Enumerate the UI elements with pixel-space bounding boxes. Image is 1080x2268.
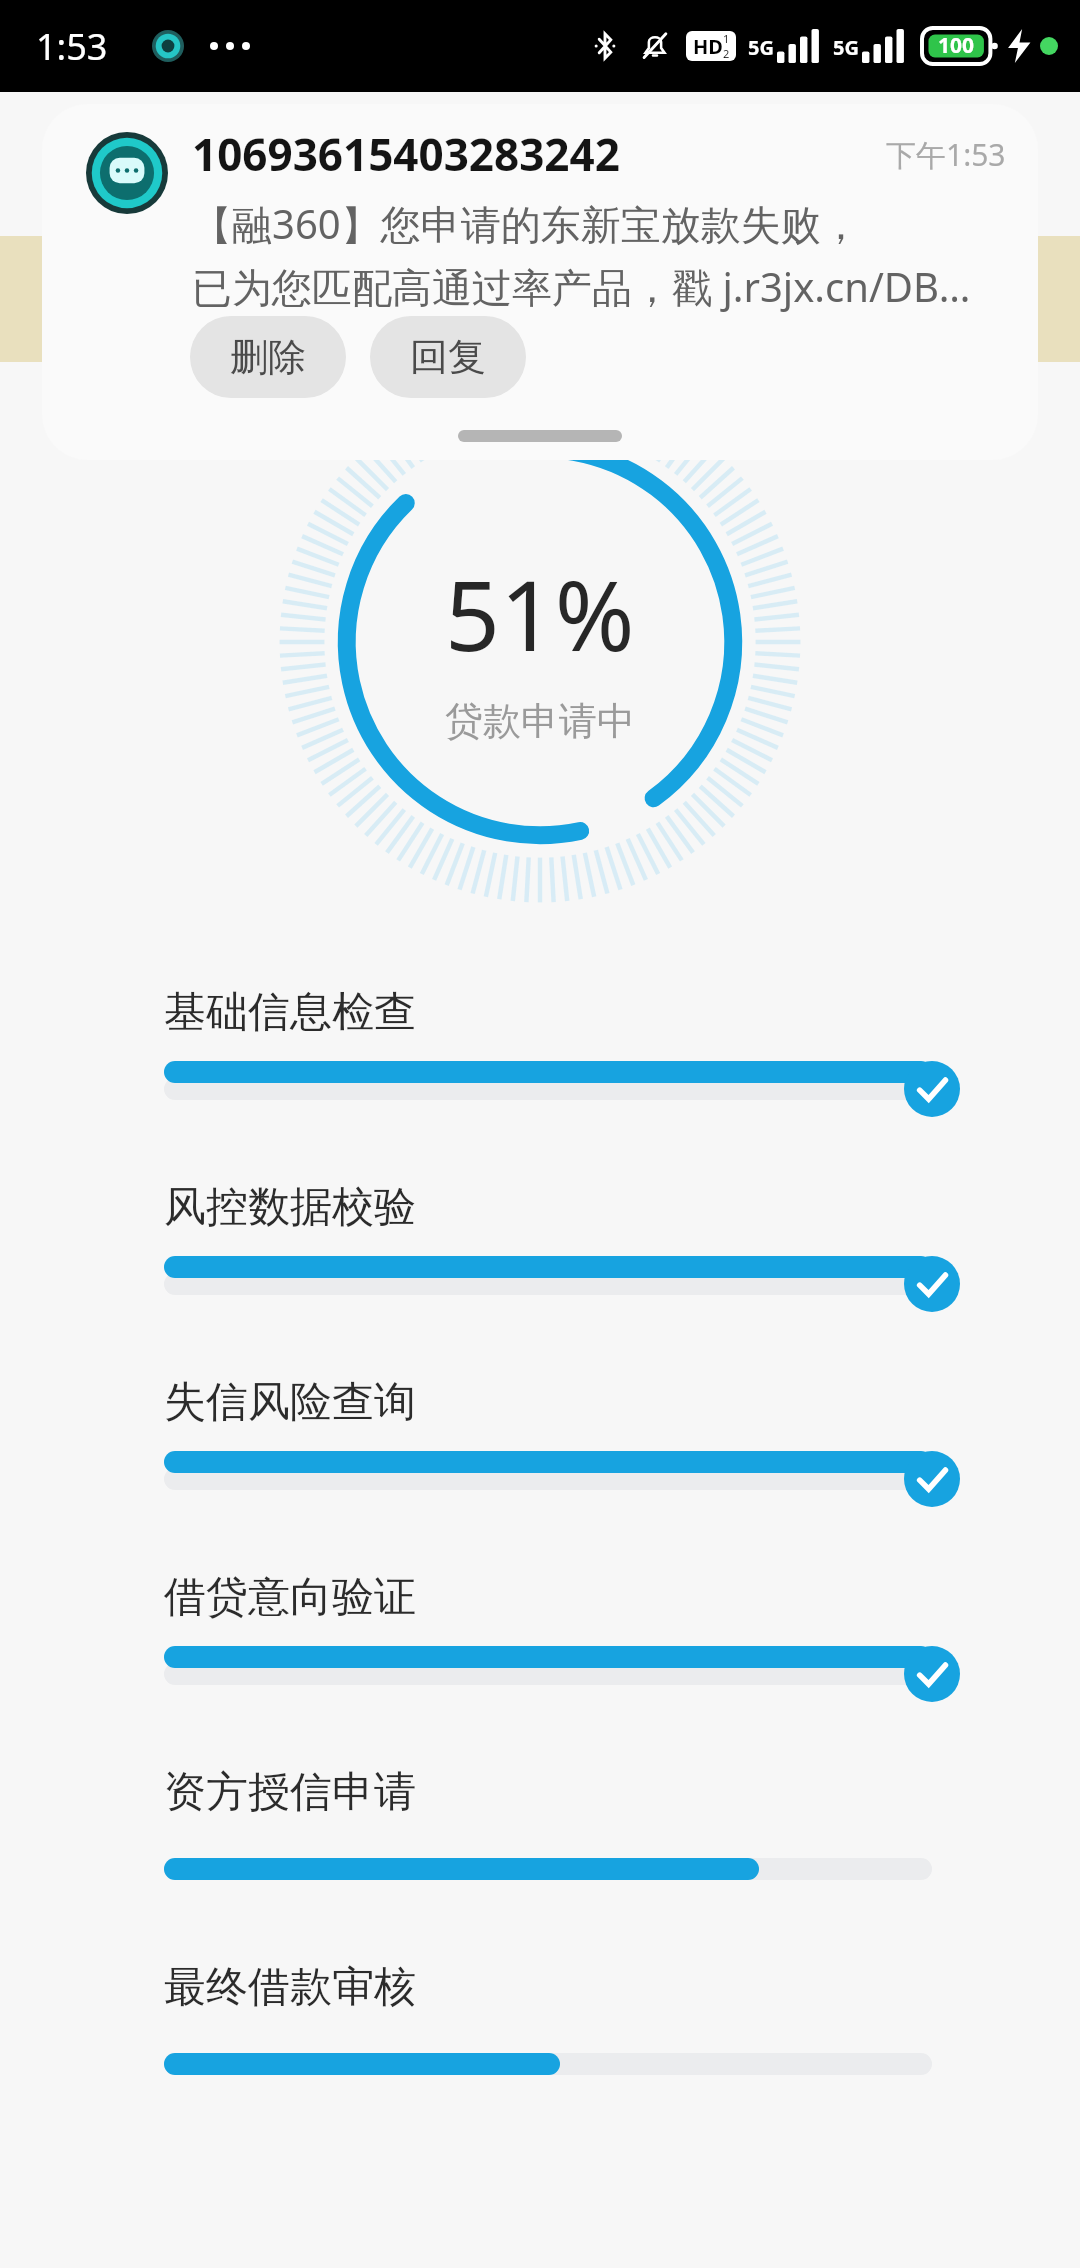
staticText: 基础信息检查 [164, 986, 416, 1039]
button[interactable]: 删除 [190, 316, 346, 398]
staticText: 1:53 [36, 22, 108, 71]
staticText: 1 [723, 31, 730, 46]
button[interactable]: Back [32, 124, 112, 204]
staticText: 资方授信申请 [164, 1766, 416, 1819]
staticText: 100 [922, 31, 990, 60]
staticText: 已为您匹配高通过率产品，戳 j.r3jx.cn/DB… [192, 259, 971, 314]
staticText: 5G [833, 34, 859, 61]
staticText: 2 [723, 46, 730, 61]
staticText: 温馨提示：该产品由第三方 [302, 278, 710, 321]
staticText: 【融360】您申请的东新宝放款失败， [192, 196, 861, 251]
button[interactable]: 10693615403283242 [42, 104, 1038, 460]
button[interactable]: 最终借款审核 [0, 1961, 1080, 2092]
staticText: 5G [748, 34, 774, 61]
staticText: HD [693, 33, 723, 60]
staticText: 失信风险查询 [164, 1376, 416, 1429]
staticText: 回复 [410, 333, 486, 381]
button[interactable]: 资方授信申请 [0, 1766, 1080, 1897]
staticText: 贷款申请中 [445, 697, 635, 745]
button[interactable]: 回复 [370, 316, 526, 398]
button[interactable]: 借贷意向验证 [0, 1571, 1080, 1702]
staticText: 10693615403283242 [192, 124, 886, 184]
staticText: 删除 [230, 333, 306, 381]
staticText: 风控数据校验 [164, 1181, 416, 1234]
button[interactable]: 基础信息检查 [0, 986, 1080, 1117]
button[interactable]: 风控数据校验 [0, 1181, 1080, 1312]
staticText: 借贷意向验证 [164, 1571, 416, 1624]
staticText: 51% [445, 548, 635, 679]
staticText: 最终借款审核 [164, 1961, 416, 2014]
button[interactable]: 失信风险查询 [0, 1376, 1080, 1507]
staticText: 下午1:53 [886, 134, 1006, 175]
staticText: 三方 [716, 278, 784, 321]
staticText: hongbao...... [417, 138, 663, 195]
